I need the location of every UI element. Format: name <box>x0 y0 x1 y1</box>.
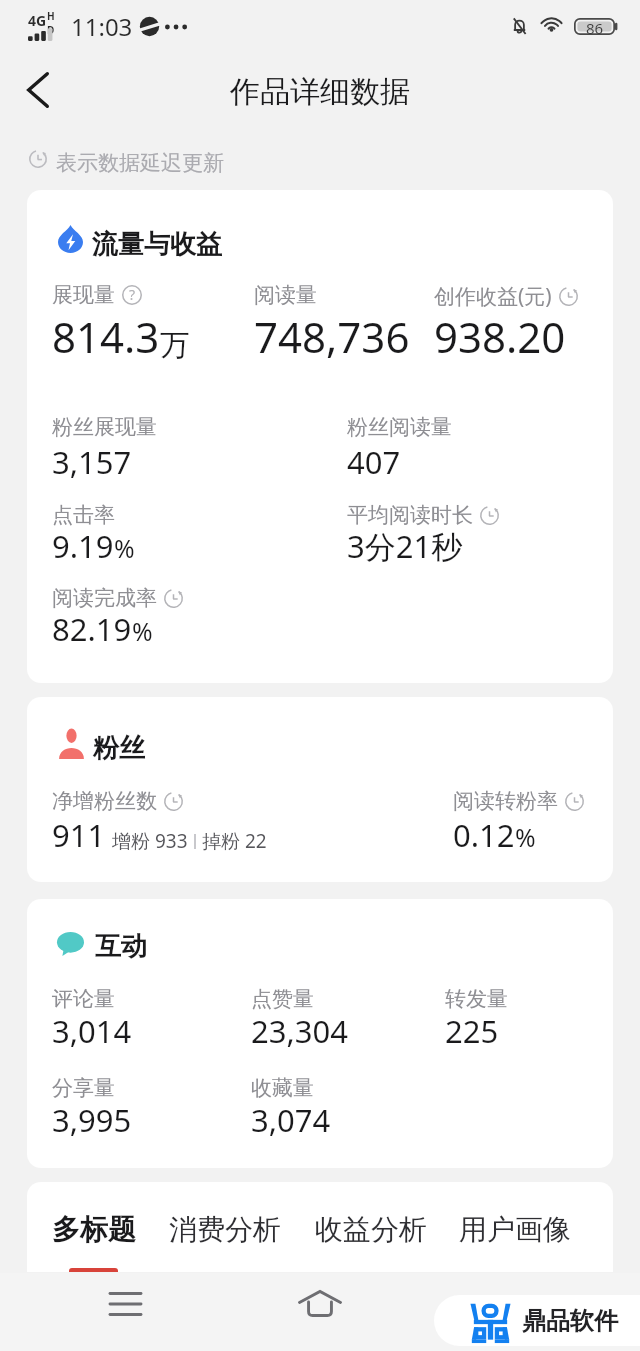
staticText: 阅读转粉率 <box>453 788 558 814</box>
staticText: 3,074 <box>251 1099 331 1141</box>
staticText: 点赞量 <box>251 986 314 1012</box>
staticText: 点击率 <box>52 502 115 528</box>
staticText: 粉丝展现量 <box>52 414 157 440</box>
staticText: 86 <box>586 18 604 35</box>
staticText: 分享量 <box>52 1075 115 1101</box>
staticText: 流量与收益 <box>92 228 222 261</box>
button[interactable]: 用户画像 <box>459 1182 571 1272</box>
staticText: 增粉 933 <box>112 828 188 854</box>
staticText: % <box>114 531 135 565</box>
staticText: 3分21秒 <box>347 525 463 567</box>
staticText: 748,736 <box>254 308 410 365</box>
staticText: 收益分析 <box>315 1212 427 1247</box>
staticText: 225 <box>445 1010 499 1052</box>
staticText: 创作收益(元) <box>434 282 552 311</box>
staticText: 82.19 <box>52 608 132 650</box>
staticText: 407 <box>347 441 401 483</box>
staticText: 3,014 <box>52 1010 132 1052</box>
staticText: 消费分析 <box>169 1212 281 1247</box>
button[interactable]: Recent apps <box>95 1280 155 1328</box>
staticText: 9.19 <box>52 525 114 567</box>
staticText: 多标题 <box>52 1212 136 1247</box>
staticText: ? <box>129 285 136 304</box>
button[interactable]: 消费分析 <box>169 1182 281 1272</box>
staticText: 收藏量 <box>251 1075 314 1101</box>
staticText: 平均阅读时长 <box>347 502 473 528</box>
staticText: 互动 <box>95 930 147 963</box>
staticText: 814.3 <box>52 308 160 365</box>
staticText: 11:03 <box>71 10 133 43</box>
staticText: 3,995 <box>52 1099 132 1141</box>
staticText: 用户画像 <box>459 1212 571 1247</box>
staticText: 阅读量 <box>254 282 317 308</box>
staticText: 阅读完成率 <box>52 585 157 611</box>
staticText: 0.12 <box>453 814 515 856</box>
staticText: 净增粉丝数 <box>52 788 157 814</box>
button[interactable]: 收益分析 <box>315 1182 427 1272</box>
staticText: 展现量 <box>52 282 115 308</box>
staticText: 粉丝阅读量 <box>347 414 452 440</box>
button[interactable]: 多标题 <box>52 1182 136 1272</box>
button[interactable]: Home <box>290 1279 350 1327</box>
staticText: 转发量 <box>445 986 508 1012</box>
staticText: 鼎品软件 <box>522 1306 618 1336</box>
staticText: 938.20 <box>434 308 566 365</box>
staticText: 万 <box>160 327 190 364</box>
staticText: 4G <box>28 11 47 30</box>
button[interactable]: Back <box>8 60 68 120</box>
staticText: % <box>515 820 536 854</box>
staticText: HD <box>47 9 58 37</box>
staticText: 掉粉 22 <box>202 828 267 854</box>
staticText: 作品详细数据 <box>230 73 410 111</box>
staticText: 23,304 <box>251 1010 348 1052</box>
staticText: % <box>132 614 153 648</box>
staticText: 3,157 <box>52 441 132 483</box>
staticText: 粉丝 <box>93 732 145 765</box>
staticText: 表示数据延迟更新 <box>56 150 224 176</box>
staticText: 评论量 <box>52 986 115 1012</box>
staticText: 911 <box>52 814 106 856</box>
